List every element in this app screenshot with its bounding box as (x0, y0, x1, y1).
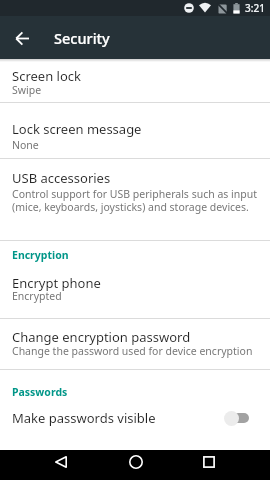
staticText: Change the password used for device encr… (12, 344, 253, 358)
button[interactable] (224, 408, 249, 428)
button[interactable]: Lock screen message (0, 103, 270, 158)
staticText: 3:21 (245, 1, 265, 15)
staticText: Make passwords visible (12, 409, 224, 427)
staticText: Lock screen message (12, 120, 142, 138)
button[interactable]: Encrypt phone (0, 241, 270, 318)
staticText: None (12, 138, 39, 152)
staticText: Passwords (12, 385, 68, 399)
button[interactable]: USB accessories (0, 159, 270, 240)
button[interactable] (184, 450, 234, 474)
staticText: Swipe (12, 83, 42, 97)
staticText: Encrypted (12, 289, 62, 303)
staticText: Encrypt phone (12, 274, 101, 292)
button[interactable] (36, 450, 86, 474)
staticText: Screen lock (12, 67, 81, 85)
staticText: Control support for USB peripherals such… (12, 187, 268, 214)
staticText: Change encryption password (12, 328, 191, 346)
button[interactable] (111, 450, 161, 474)
staticText: Security (54, 28, 110, 48)
staticText: Encryption (12, 248, 69, 262)
staticText: USB accessories (12, 169, 111, 187)
button[interactable]: Make passwords visible (0, 406, 270, 430)
button[interactable]: Change encryption password (0, 319, 270, 369)
button[interactable]: Screen lock (0, 59, 270, 102)
button[interactable] (10, 26, 34, 50)
